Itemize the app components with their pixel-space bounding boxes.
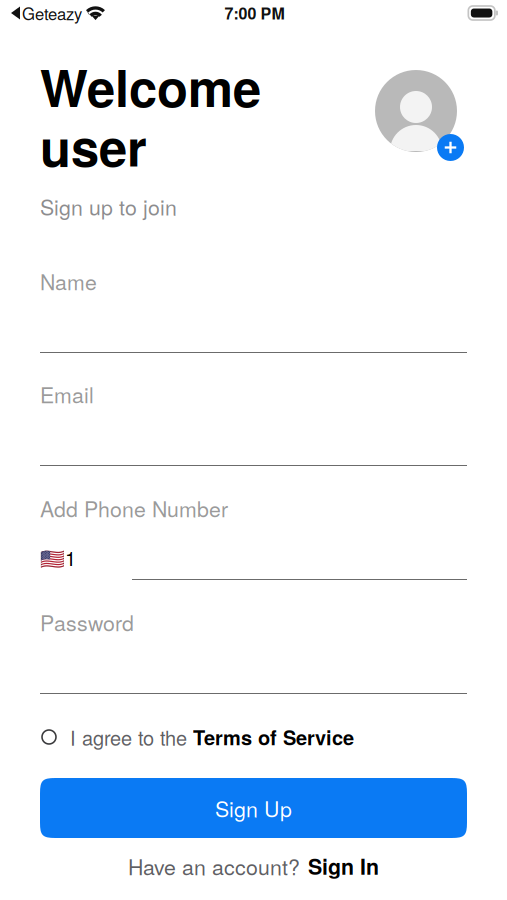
staticText: Sign In [308,851,379,881]
button[interactable]: I agree to the [40,722,467,752]
button[interactable]: Sign In [300,851,379,881]
staticText: Welcome [40,50,261,123]
staticText: user [40,110,147,182]
button[interactable]: Name [40,269,467,293]
button[interactable]: Add Phone Number [40,496,467,520]
staticText: Terms of Service [193,723,354,751]
staticText: Email [40,379,94,409]
staticText: 7:00 PM [224,1,284,24]
staticText: 🇺🇸1 [40,543,76,572]
staticText: Geteazy [22,1,82,25]
staticText: Sign up to join [40,191,177,221]
staticText: Name [40,266,97,296]
button[interactable]: Password [40,610,467,634]
button[interactable]: Add profile photo [437,134,464,161]
staticText: Add Phone Number [40,493,228,523]
staticText: Sign Up [215,793,292,823]
staticText: Have an account? [128,851,300,881]
staticText: Password [40,607,134,637]
staticText: I agree to the [70,723,193,751]
button[interactable]: Email [40,382,467,406]
button[interactable]: Sign Up [40,778,467,838]
